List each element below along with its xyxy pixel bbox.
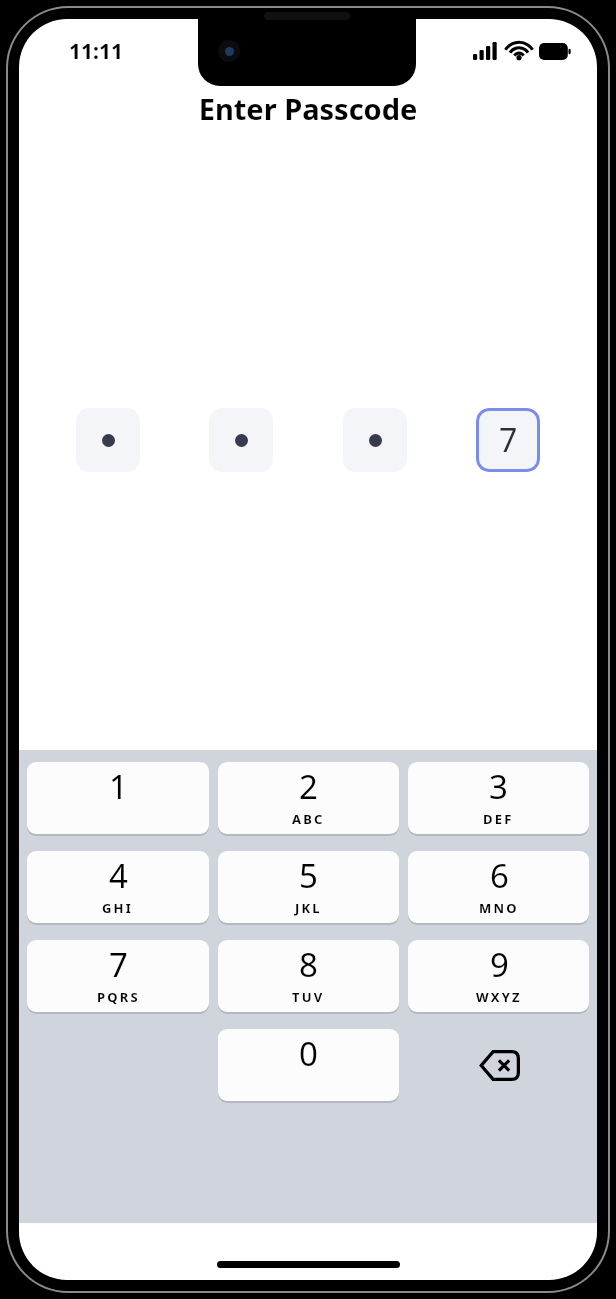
button[interactable]: 6 (408, 851, 589, 923)
staticText: 3 (489, 764, 508, 809)
staticText: ABC (292, 810, 325, 828)
staticText: Enter Passcode (19, 89, 597, 128)
staticText: 7 (109, 942, 128, 987)
button[interactable]: 1 (27, 762, 209, 834)
button[interactable] (343, 408, 407, 472)
button[interactable]: 0 (218, 1029, 399, 1101)
staticText: 5 (299, 853, 318, 898)
button[interactable]: Delete (408, 1029, 589, 1101)
staticText: PQRS (97, 988, 140, 1006)
button[interactable]: 5 (218, 851, 399, 923)
staticText: 9 (490, 942, 509, 987)
button[interactable]: 8 (218, 940, 399, 1012)
staticText: 4 (109, 853, 128, 898)
staticText: 7 (499, 418, 518, 462)
staticText: MNO (479, 899, 519, 917)
staticText: 1 (109, 764, 128, 809)
staticText: 11:11 (69, 37, 123, 66)
button[interactable]: 9 (408, 940, 589, 1012)
staticText: 6 (490, 853, 509, 898)
staticText: GHI (102, 899, 134, 917)
staticText: JKL (295, 899, 322, 917)
button[interactable]: 4 (27, 851, 209, 923)
button[interactable]: 3 (408, 762, 589, 834)
staticText: WXYZ (476, 988, 522, 1006)
staticText: TUV (292, 988, 325, 1006)
staticText: 2 (299, 764, 318, 809)
button[interactable]: 7 (27, 940, 209, 1012)
button[interactable] (76, 408, 140, 472)
staticText: 8 (299, 942, 318, 987)
button[interactable]: 2 (218, 762, 399, 834)
staticText: 0 (299, 1031, 318, 1076)
button[interactable] (209, 408, 273, 472)
button[interactable]: 7 (476, 408, 540, 472)
staticText: DEF (483, 810, 514, 828)
